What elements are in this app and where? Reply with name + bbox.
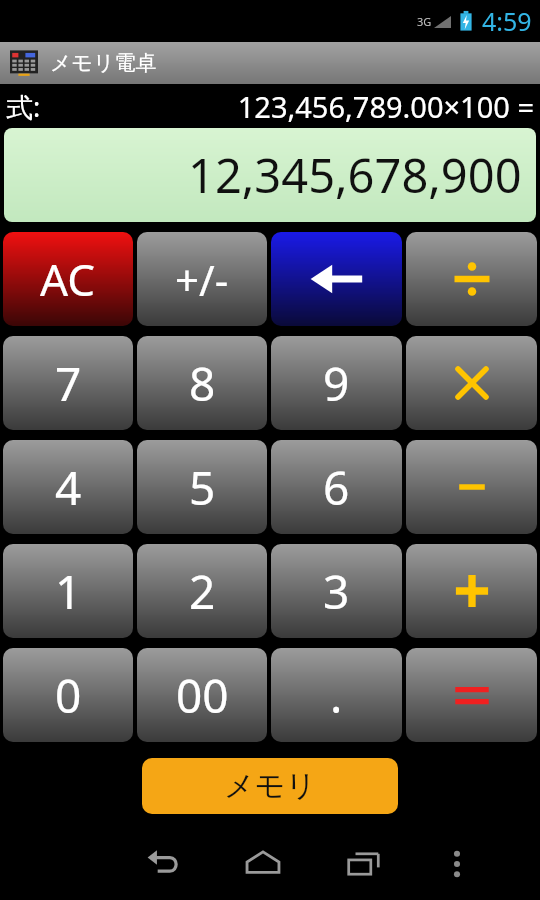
staticText: +/-: [175, 251, 229, 308]
staticText: 5: [189, 456, 216, 519]
button[interactable]: More options: [414, 828, 500, 900]
button[interactable]: 7: [3, 336, 133, 430]
staticText: 9: [323, 352, 350, 415]
staticText: AC: [40, 249, 96, 309]
staticText: 3: [323, 560, 350, 623]
button[interactable]: 6: [271, 440, 402, 534]
staticText: メモリ電卓: [50, 50, 157, 76]
staticText: 4: [55, 456, 82, 519]
button[interactable]: 8: [137, 336, 267, 430]
button[interactable]: .: [271, 648, 402, 742]
button[interactable]: Back: [111, 828, 212, 900]
button[interactable]: Plus: [406, 544, 537, 638]
button[interactable]: Backspace: [271, 232, 402, 326]
button[interactable]: Minus: [406, 440, 537, 534]
button[interactable]: 4: [3, 440, 133, 534]
button[interactable]: Equals: [406, 648, 537, 742]
button[interactable]: Home: [212, 828, 313, 900]
staticText: 6: [323, 456, 350, 519]
button[interactable]: 2: [137, 544, 267, 638]
button[interactable]: Multiply: [406, 336, 537, 430]
staticText: 2: [189, 560, 216, 623]
button[interactable]: 1: [3, 544, 133, 638]
button[interactable]: Recent apps: [313, 828, 414, 900]
staticText: 1: [55, 560, 82, 623]
staticText: 式:: [6, 88, 41, 125]
staticText: 7: [55, 352, 82, 415]
button[interactable]: 5: [137, 440, 267, 534]
staticText: .: [330, 664, 343, 727]
button[interactable]: 0: [3, 648, 133, 742]
staticText: 00: [176, 664, 229, 727]
button[interactable]: 3: [271, 544, 402, 638]
staticText: 123,456,789.00×100 =: [41, 87, 534, 126]
button[interactable]: Divide: [406, 232, 537, 326]
staticText: メモリ: [224, 767, 317, 805]
button[interactable]: AC: [3, 232, 133, 326]
staticText: 0: [55, 664, 82, 727]
staticText: 8: [189, 352, 216, 415]
button[interactable]: 00: [137, 648, 267, 742]
button[interactable]: 9: [271, 336, 402, 430]
button[interactable]: メモリ: [142, 758, 398, 814]
button[interactable]: 12,345,678,900: [4, 128, 536, 222]
staticText: 3G: [417, 14, 432, 29]
staticText: 12,345,678,900: [188, 143, 522, 207]
button[interactable]: +/-: [137, 232, 267, 326]
staticText: 4:59: [482, 4, 532, 38]
